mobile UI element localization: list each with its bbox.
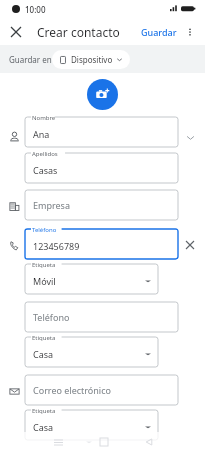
staticText: Teléfono xyxy=(32,226,57,234)
button[interactable]: Inicio xyxy=(95,433,113,451)
button[interactable]: Más opciones xyxy=(180,22,200,42)
staticText: Guardar en xyxy=(9,54,52,65)
button[interactable]: Teléfono xyxy=(25,302,178,332)
button[interactable]: Correo electrónico xyxy=(25,375,178,405)
staticText: Etiqueta xyxy=(32,261,56,269)
staticText: Crear contacto xyxy=(37,24,120,40)
staticText: Empresa xyxy=(33,199,70,211)
staticText: Nombre xyxy=(32,114,56,122)
button[interactable]: Borrar teléfono xyxy=(183,238,197,252)
button[interactable]: Expandir xyxy=(183,130,197,144)
staticText: Teléfono xyxy=(33,311,70,323)
button[interactable]: Menú xyxy=(49,433,67,451)
button[interactable]: Apellidos xyxy=(25,153,178,183)
button[interactable]: Etiqueta xyxy=(25,410,158,440)
staticText: 10:00 xyxy=(25,4,46,15)
button[interactable]: Guardar xyxy=(137,22,181,42)
button[interactable]: Añadir foto xyxy=(87,79,118,110)
staticText: Casas xyxy=(33,164,58,176)
staticText: Correo electrónico xyxy=(33,384,111,396)
button[interactable]: Etiqueta xyxy=(25,337,158,367)
staticText: Casa xyxy=(33,421,54,433)
button[interactable]: Atrás xyxy=(140,433,158,451)
button[interactable]: Teléfono xyxy=(25,229,178,259)
button[interactable]: Cerrar xyxy=(4,20,28,44)
staticText: Dispositivo xyxy=(71,54,113,65)
button[interactable]: Nombre xyxy=(25,117,178,147)
staticText: Casa xyxy=(33,348,54,360)
staticText: Etiqueta xyxy=(32,334,56,342)
button[interactable]: Dispositivo xyxy=(52,50,130,69)
staticText: Apellidos xyxy=(32,150,58,158)
staticText: Móvil xyxy=(33,275,56,287)
staticText: Etiqueta xyxy=(32,407,56,415)
staticText: Ana xyxy=(33,128,50,140)
staticText: Guardar xyxy=(141,26,177,38)
staticText: 123456789 xyxy=(33,240,80,252)
button[interactable]: Empresa xyxy=(25,190,178,220)
button[interactable]: Etiqueta xyxy=(25,264,158,294)
